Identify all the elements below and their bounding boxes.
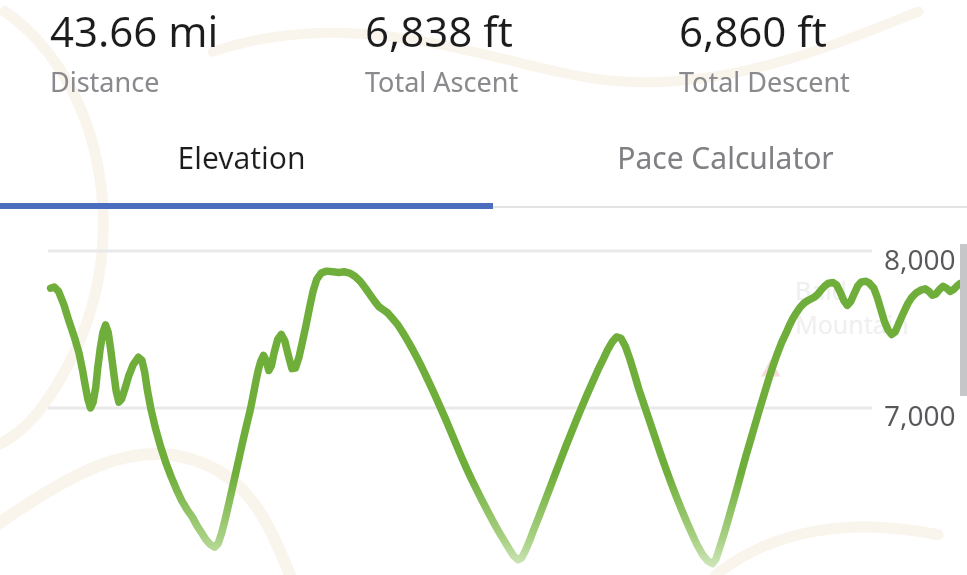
staticText: 43.66 mi	[50, 2, 219, 59]
staticText: 6,838 ft	[365, 2, 513, 59]
staticText: 7,000	[884, 396, 956, 434]
staticText: 6,860 ft	[679, 2, 827, 59]
staticText: Distance	[50, 63, 160, 100]
staticText: Bald	[795, 273, 848, 307]
staticText: Total Descent	[679, 63, 850, 100]
staticText: 8,000	[884, 240, 956, 278]
button[interactable]: Elevation	[0, 110, 483, 205]
button[interactable]: Pace Calculator	[483, 110, 967, 205]
staticText: Elevation	[177, 137, 306, 178]
staticText: Mountain	[795, 307, 909, 341]
staticText: Pace Calculator	[617, 137, 834, 178]
staticText: Total Ascent	[365, 63, 519, 100]
